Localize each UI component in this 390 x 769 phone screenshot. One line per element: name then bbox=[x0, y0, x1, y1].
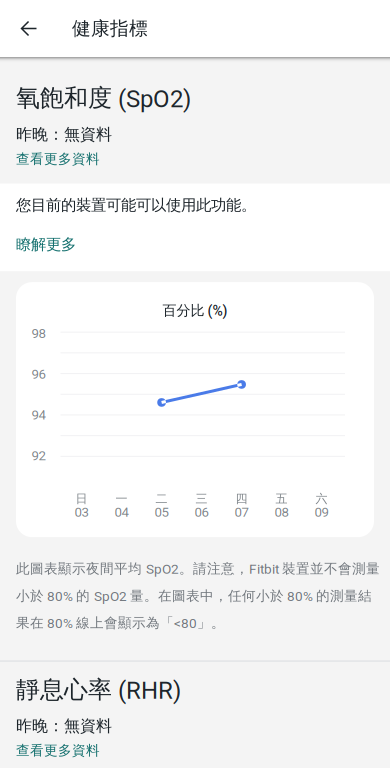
staticText: 05 bbox=[154, 504, 168, 520]
staticText: 小於 80% 的 SpO2 量。在圖表中，任何小於 80% 的測量結 bbox=[16, 587, 372, 604]
staticText: 03 bbox=[74, 504, 88, 520]
button[interactable]: 查看更多資料 bbox=[16, 742, 100, 759]
staticText: 此圖表顯示夜間平均 SpO2。請注意，Fitbit 裝置並不會測量 bbox=[16, 560, 380, 577]
staticText: 94 bbox=[31, 407, 45, 423]
staticText: 六 bbox=[315, 491, 327, 506]
staticText: 氧飽和度 (SpO2) bbox=[16, 83, 191, 113]
staticText: 96 bbox=[31, 366, 45, 382]
staticText: 08 bbox=[274, 504, 288, 520]
button[interactable]: 查看更多資料 bbox=[16, 150, 100, 167]
button[interactable]: 瞭解更多 bbox=[16, 235, 76, 254]
staticText: 三 bbox=[195, 491, 207, 506]
staticText: 07 bbox=[234, 504, 248, 520]
staticText: 昨晚：無資料 bbox=[16, 124, 112, 144]
staticText: 靜息心率 (RHR) bbox=[16, 675, 181, 705]
staticText: 昨晚：無資料 bbox=[16, 716, 112, 736]
staticText: 查看更多資料 bbox=[16, 742, 100, 759]
staticText: 日 bbox=[75, 491, 87, 506]
staticText: 您目前的裝置可能可以使用此功能。 bbox=[16, 195, 256, 215]
staticText: 查看更多資料 bbox=[16, 150, 100, 167]
staticText: 04 bbox=[114, 504, 128, 520]
staticText: 五 bbox=[275, 491, 287, 506]
staticText: 二 bbox=[155, 491, 167, 506]
staticText: 一 bbox=[115, 491, 127, 506]
staticText: 健康指標 bbox=[72, 17, 148, 40]
staticText: 百分比 (%) bbox=[162, 302, 227, 319]
staticText: 瞭解更多 bbox=[16, 235, 76, 254]
staticText: 92 bbox=[31, 448, 45, 463]
staticText: 06 bbox=[194, 504, 208, 520]
staticText: 98 bbox=[31, 326, 45, 341]
button[interactable]: Back bbox=[0, 0, 57, 57]
staticText: 四 bbox=[235, 491, 247, 506]
staticText: 果在 80% 線上會顯示為「<80」。 bbox=[16, 614, 225, 631]
staticText: 09 bbox=[314, 504, 328, 520]
